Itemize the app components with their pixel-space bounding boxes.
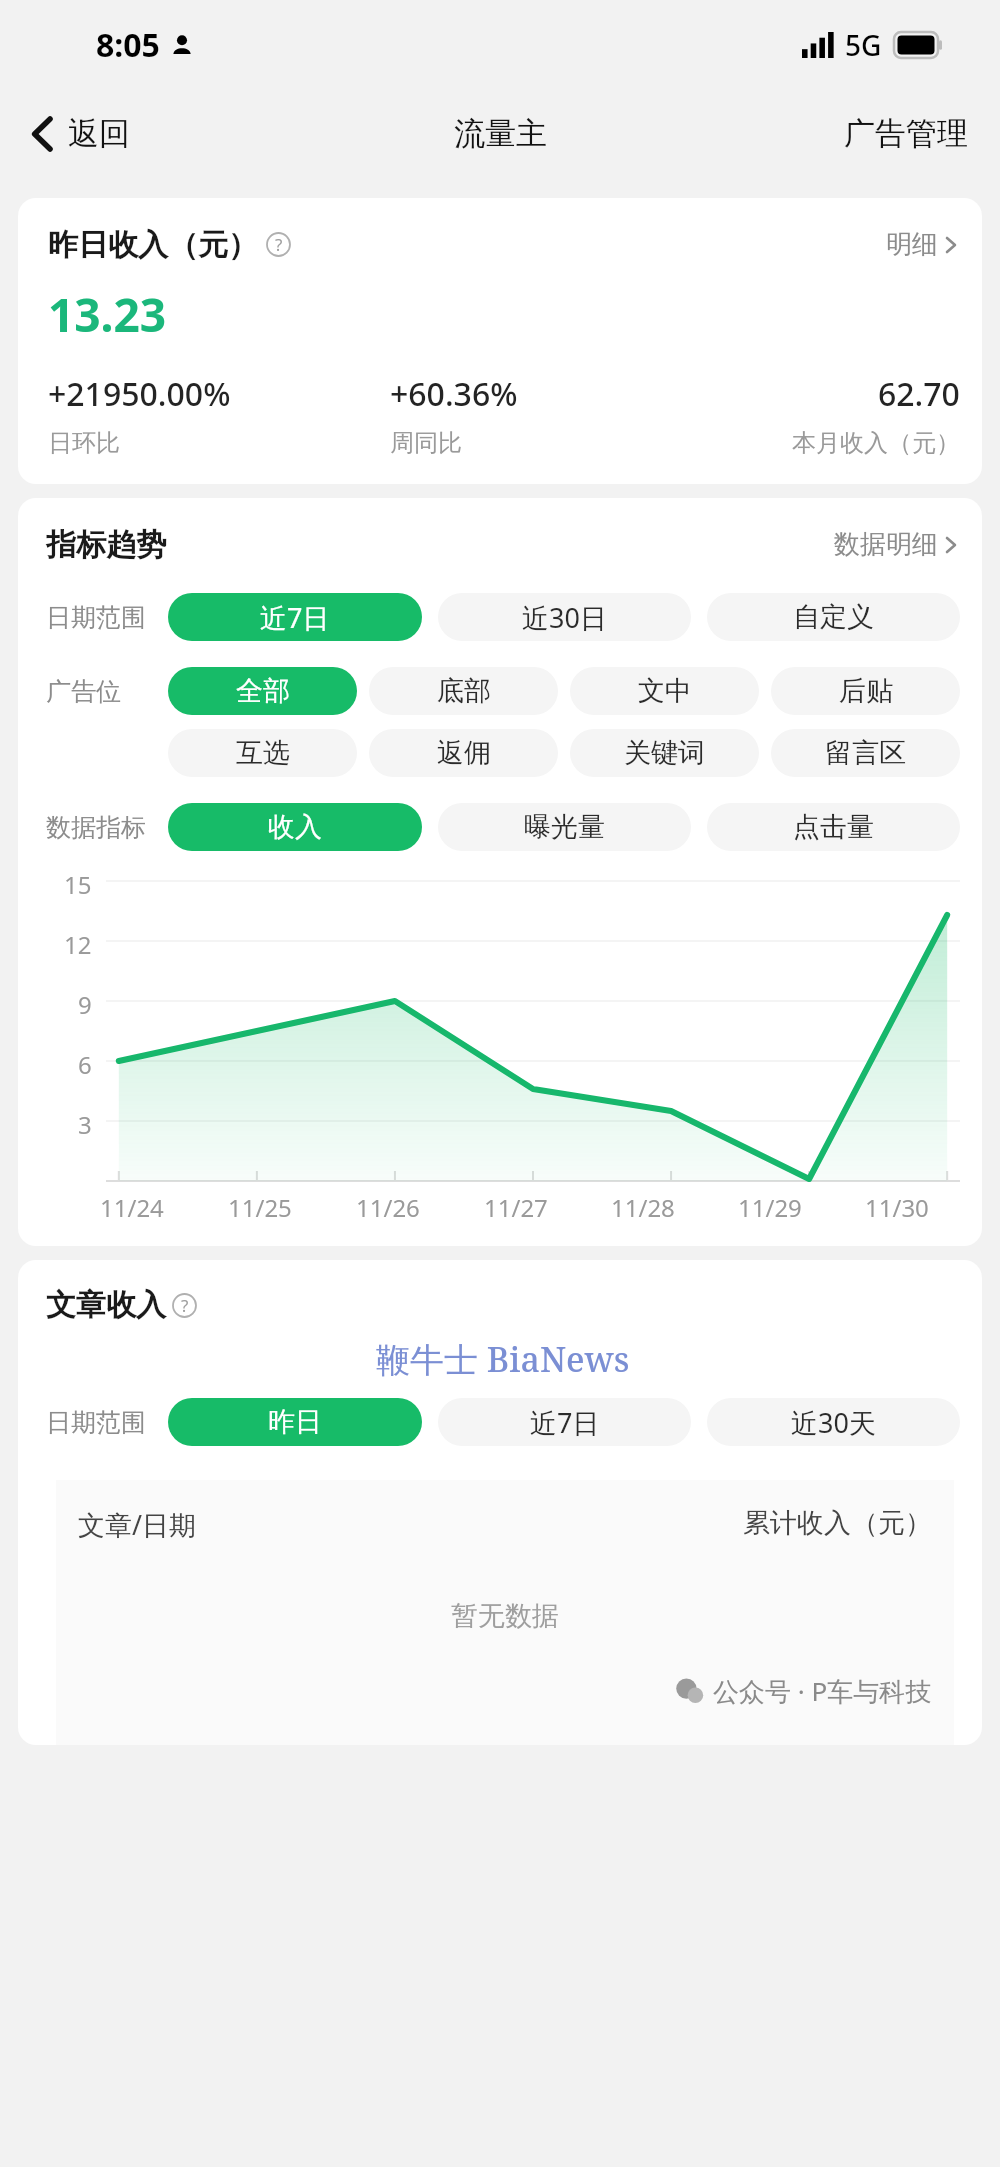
- button[interactable]: 明细: [882, 224, 960, 265]
- staticText: 13.23: [48, 283, 167, 346]
- button[interactable]: 自定义: [707, 593, 960, 641]
- button[interactable]: 近7日: [438, 1398, 691, 1446]
- staticText: ?: [181, 1294, 189, 1317]
- button[interactable]: 点击量: [707, 803, 960, 851]
- staticText: 11/30: [865, 1191, 929, 1224]
- button[interactable]: 返回: [24, 108, 138, 159]
- staticText: 日环比: [48, 428, 120, 458]
- staticText: 文章/日期: [78, 1506, 197, 1543]
- staticText: 11/28: [611, 1191, 675, 1224]
- staticText: 文章收入: [46, 1286, 166, 1324]
- staticText: 15: [64, 868, 92, 901]
- button[interactable]: 留言区: [771, 729, 960, 777]
- staticText: 11/25: [228, 1191, 292, 1224]
- staticText: 昨日: [268, 1405, 322, 1439]
- staticText: 日期范围: [46, 1407, 154, 1438]
- button[interactable]: 近7日: [168, 593, 422, 641]
- staticText: 周同比: [390, 428, 462, 458]
- staticText: 流量主: [454, 114, 547, 153]
- staticText: 互选: [236, 736, 290, 770]
- staticText: 昨日收入（元）: [48, 226, 258, 264]
- staticText: 文中: [638, 674, 692, 708]
- staticText: 近7日: [260, 599, 330, 636]
- button[interactable]: 返佣: [369, 729, 558, 777]
- staticText: 公众号 · P车与科技: [713, 1673, 932, 1709]
- staticText: 点击量: [793, 810, 874, 844]
- staticText: 近30日: [522, 599, 607, 636]
- button[interactable]: 后贴: [771, 667, 960, 715]
- button[interactable]: 全部: [168, 667, 357, 715]
- staticText: +60.36%: [390, 372, 518, 416]
- button[interactable]: 近30天: [707, 1398, 960, 1446]
- staticText: 近30天: [791, 1404, 876, 1441]
- staticText: 日期范围: [46, 602, 154, 633]
- staticText: 底部: [437, 674, 491, 708]
- button[interactable]: 文中: [570, 667, 759, 715]
- button[interactable]: 近30日: [438, 593, 691, 641]
- button[interactable]: 曝光量: [438, 803, 691, 851]
- staticText: 12: [64, 928, 92, 961]
- staticText: 11/24: [100, 1191, 164, 1224]
- staticText: 11/26: [356, 1191, 420, 1224]
- staticText: 曝光量: [524, 810, 605, 844]
- staticText: 鞭牛士 BiaNews: [376, 1336, 630, 1382]
- staticText: 9: [78, 988, 92, 1021]
- staticText: 3: [78, 1108, 92, 1141]
- button[interactable]: 底部: [369, 667, 558, 715]
- staticText: 6: [78, 1048, 92, 1081]
- button[interactable]: 关键词: [570, 729, 759, 777]
- staticText: 累计收入（元）: [743, 1506, 932, 1540]
- staticText: 本月收入（元）: [792, 428, 960, 458]
- staticText: 5G: [845, 26, 882, 64]
- staticText: ?: [275, 233, 283, 256]
- staticText: 收入: [268, 810, 322, 844]
- staticText: 全部: [236, 674, 290, 708]
- button[interactable]: 数据明细: [830, 524, 960, 565]
- staticText: 明细: [886, 228, 938, 261]
- staticText: 11/29: [738, 1191, 802, 1224]
- staticText: 自定义: [793, 600, 874, 634]
- staticText: 数据明细: [834, 528, 938, 561]
- button[interactable]: 收入: [168, 803, 422, 851]
- staticText: 广告位: [46, 676, 154, 707]
- staticText: 暂无数据: [451, 1599, 559, 1633]
- staticText: 指标趋势: [46, 526, 166, 564]
- staticText: 62.70: [878, 372, 960, 416]
- staticText: 数据指标: [46, 812, 154, 843]
- staticText: 8:05: [96, 23, 160, 67]
- staticText: 关键词: [624, 736, 705, 770]
- staticText: 留言区: [825, 736, 906, 770]
- staticText: 广告管理: [844, 114, 968, 153]
- button[interactable]: 互选: [168, 729, 357, 777]
- staticText: 返回: [68, 114, 130, 153]
- staticText: 后贴: [839, 674, 893, 708]
- staticText: 11/27: [484, 1191, 548, 1224]
- button[interactable]: 昨日: [168, 1398, 422, 1446]
- staticText: 返佣: [437, 736, 491, 770]
- button[interactable]: 广告管理: [838, 108, 974, 159]
- staticText: 近7日: [530, 1404, 600, 1441]
- staticText: +21950.00%: [48, 372, 231, 416]
